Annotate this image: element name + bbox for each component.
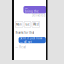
staticText: — Read — [15, 45, 26, 49]
staticText: Sent it just now — all set — [20, 37, 42, 44]
staticText: See you then — — [25, 2, 44, 10]
button[interactable]: See you then — — [23, 6, 46, 13]
staticText: bring the folder — [25, 10, 39, 17]
staticText: Delivered — [32, 14, 46, 17]
staticText: Wed — [33, 23, 39, 26]
button[interactable]: Tue — [24, 21, 31, 27]
staticText: Thanks for that — [15, 31, 34, 34]
staticText: Tue — [25, 23, 30, 26]
button[interactable]: Sent it just now — all set — [19, 37, 46, 43]
button[interactable]: Wed — [32, 21, 40, 27]
button[interactable]: Mon — [15, 21, 23, 27]
staticText: Mon — [16, 23, 22, 26]
